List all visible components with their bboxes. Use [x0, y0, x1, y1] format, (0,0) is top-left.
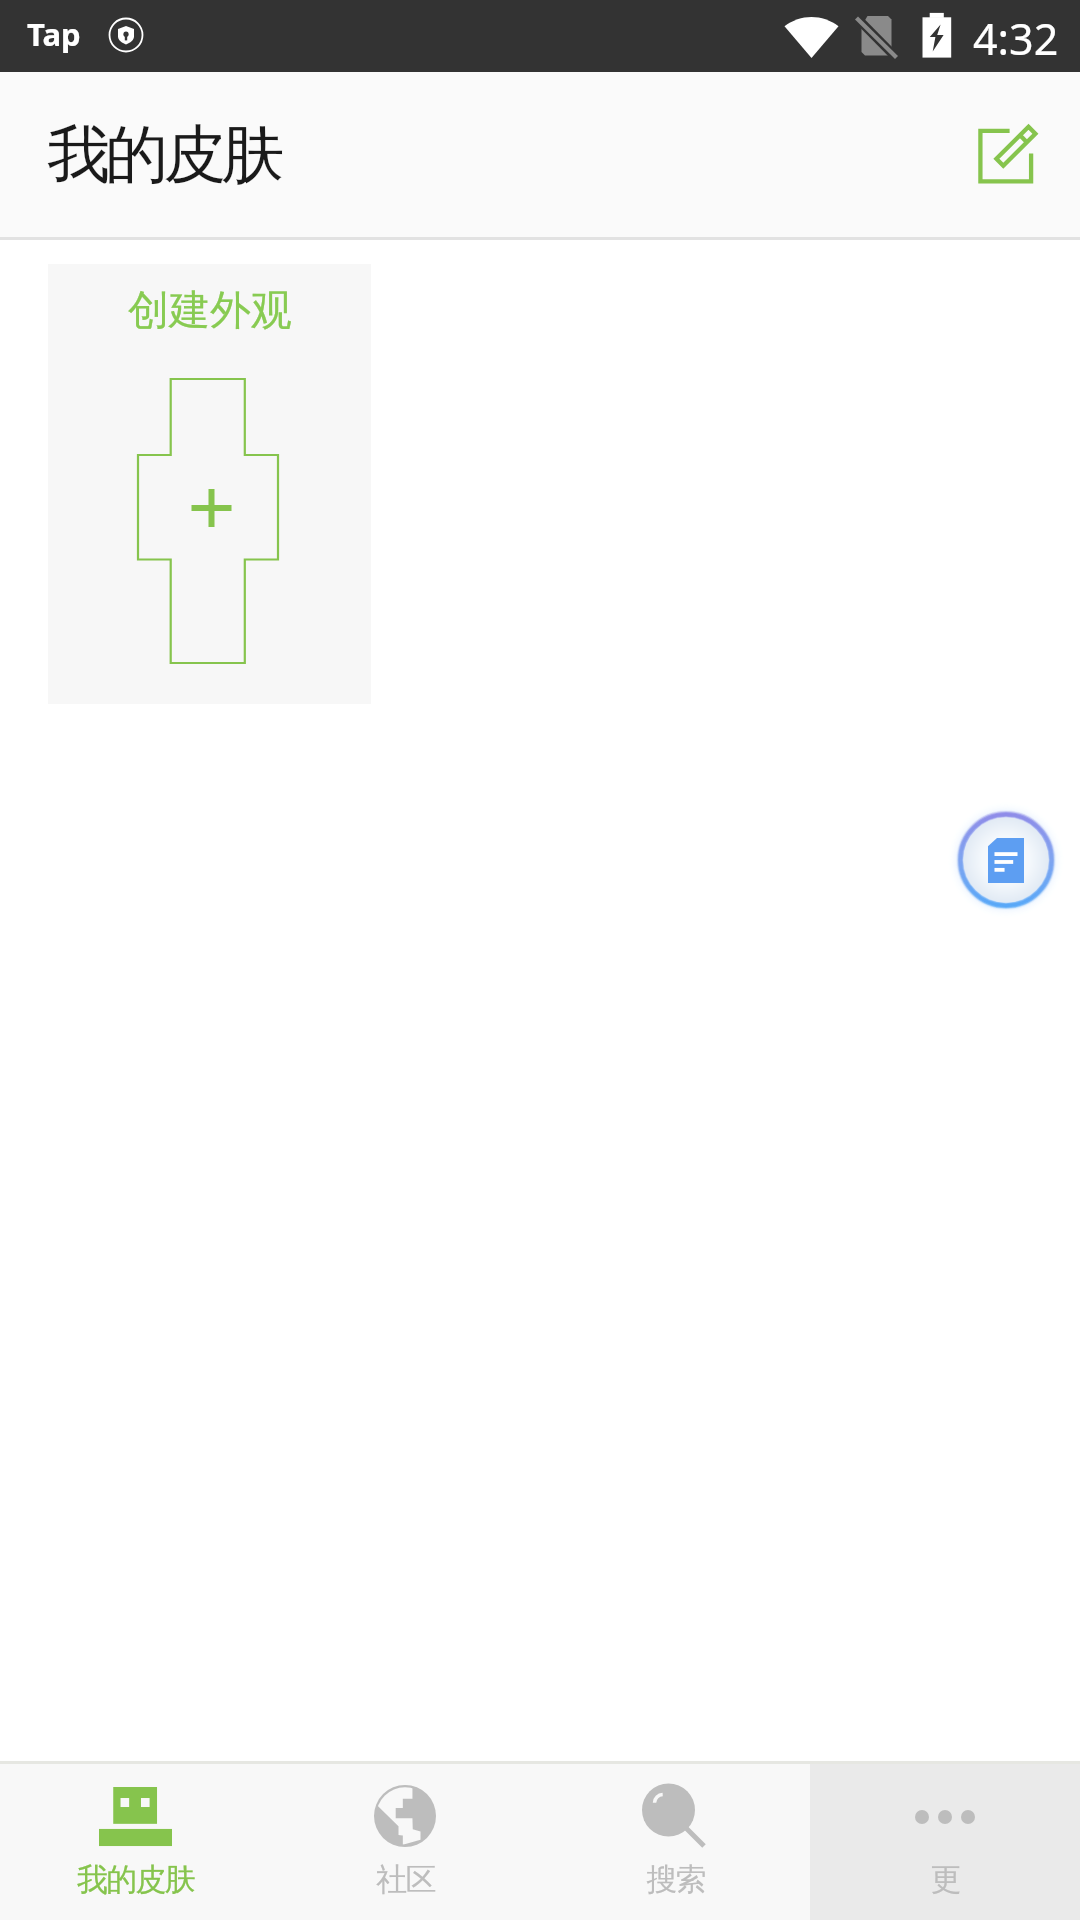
button[interactable]: 我的皮肤 [0, 1764, 270, 1920]
staticText: 创建外观 [128, 285, 292, 337]
staticText: 我的皮肤 [47, 115, 280, 194]
staticText: 我的皮肤 [77, 1860, 194, 1899]
button[interactable]: Notes [938, 792, 1074, 928]
staticText: 更 [930, 1860, 960, 1899]
staticText: 社区 [376, 1860, 435, 1899]
button[interactable]: 更 [810, 1764, 1080, 1920]
staticText: Tap [27, 13, 81, 55]
button[interactable]: 社区 [270, 1764, 540, 1920]
button[interactable]: 创建外观 [48, 264, 371, 704]
staticText: 搜索 [646, 1860, 705, 1899]
staticText: 4:32 [973, 9, 1059, 68]
button[interactable]: Edit [963, 109, 1053, 199]
button[interactable]: 搜索 [540, 1764, 810, 1920]
